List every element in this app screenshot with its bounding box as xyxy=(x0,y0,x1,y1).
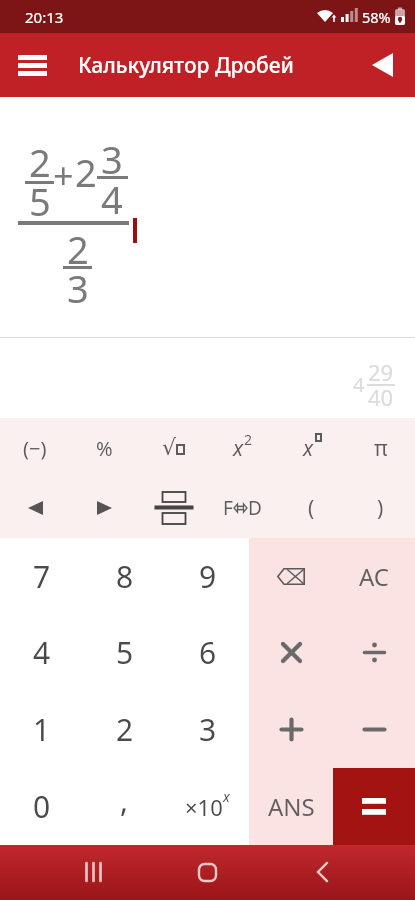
staticText: 2 xyxy=(116,709,134,750)
button[interactable] xyxy=(360,43,406,87)
staticText: 5 xyxy=(29,175,51,227)
staticText: 3 xyxy=(101,133,123,185)
button[interactable]: % xyxy=(70,418,139,478)
staticText: 40 xyxy=(368,382,394,412)
staticText: 9 xyxy=(199,556,217,597)
staticText: 2 xyxy=(244,430,253,449)
button[interactable]: 3 xyxy=(166,691,249,768)
staticText: , xyxy=(120,780,129,821)
staticText: ( xyxy=(308,494,315,523)
staticText: % xyxy=(96,435,113,462)
staticText: 29 xyxy=(368,357,394,387)
staticText: 58% xyxy=(362,7,391,27)
button[interactable] xyxy=(70,478,139,538)
button[interactable]: 1 xyxy=(0,691,83,768)
staticText: x xyxy=(303,434,314,463)
button[interactable]: x xyxy=(277,418,346,478)
staticText: (−) xyxy=(23,435,47,462)
button[interactable]: ( xyxy=(277,478,346,538)
button[interactable] xyxy=(249,614,333,691)
staticText: 6 xyxy=(199,632,217,673)
staticText: 2 xyxy=(67,223,89,275)
staticText: 2 xyxy=(29,136,51,188)
button[interactable]: 6 xyxy=(166,614,249,691)
button[interactable]: ) xyxy=(346,478,415,538)
button[interactable] xyxy=(139,478,208,538)
button[interactable] xyxy=(69,848,117,896)
button[interactable]: 0 xyxy=(0,768,83,845)
staticText: x xyxy=(233,434,244,463)
staticText: 3 xyxy=(199,709,217,750)
button[interactable]: 5 xyxy=(83,614,166,691)
button[interactable]: 7 xyxy=(0,538,83,614)
button[interactable]: 4 xyxy=(0,614,83,691)
button[interactable]: π xyxy=(346,418,415,478)
staticText: 4 xyxy=(101,173,123,225)
button[interactable]: 2 xyxy=(83,691,166,768)
staticText: D xyxy=(248,495,262,521)
staticText: Калькулятор Дробей xyxy=(78,51,294,80)
button[interactable]: √ xyxy=(139,418,208,478)
button[interactable] xyxy=(333,768,415,845)
button[interactable]: 8 xyxy=(83,538,166,614)
staticText: π xyxy=(374,434,388,463)
staticText: 4 xyxy=(33,632,51,673)
staticText: + xyxy=(53,151,74,200)
staticText: ) xyxy=(377,494,384,523)
staticText: 7 xyxy=(33,556,51,597)
button[interactable] xyxy=(333,614,415,691)
button[interactable] xyxy=(249,691,333,768)
button[interactable] xyxy=(8,42,56,88)
button[interactable]: (−) xyxy=(0,418,70,478)
staticText: x xyxy=(223,787,230,806)
staticText: 0 xyxy=(33,786,51,827)
button[interactable] xyxy=(0,478,70,538)
staticText: 1 xyxy=(33,709,51,750)
button[interactable]: ANS xyxy=(249,768,333,845)
button[interactable]: AC xyxy=(333,538,415,614)
staticText: F xyxy=(223,495,233,521)
button[interactable]: x xyxy=(208,418,277,478)
staticText: 8 xyxy=(116,556,134,597)
staticText: ×10 xyxy=(185,792,223,822)
button[interactable] xyxy=(249,538,333,614)
button[interactable]: 9 xyxy=(166,538,249,614)
staticText: 5 xyxy=(116,632,134,673)
button[interactable]: , xyxy=(83,768,166,845)
staticText: √ xyxy=(162,435,177,461)
button[interactable] xyxy=(183,848,231,896)
button[interactable] xyxy=(333,691,415,768)
staticText: 2 xyxy=(75,146,97,198)
button[interactable]: F xyxy=(208,478,277,538)
staticText: 4 xyxy=(353,371,365,398)
staticText: ANS xyxy=(268,790,315,823)
button[interactable]: ×10 xyxy=(166,768,249,845)
staticText: 20:13 xyxy=(25,7,64,27)
staticText: 3 xyxy=(67,262,89,314)
button[interactable] xyxy=(298,848,346,896)
staticText: AC xyxy=(359,560,390,593)
